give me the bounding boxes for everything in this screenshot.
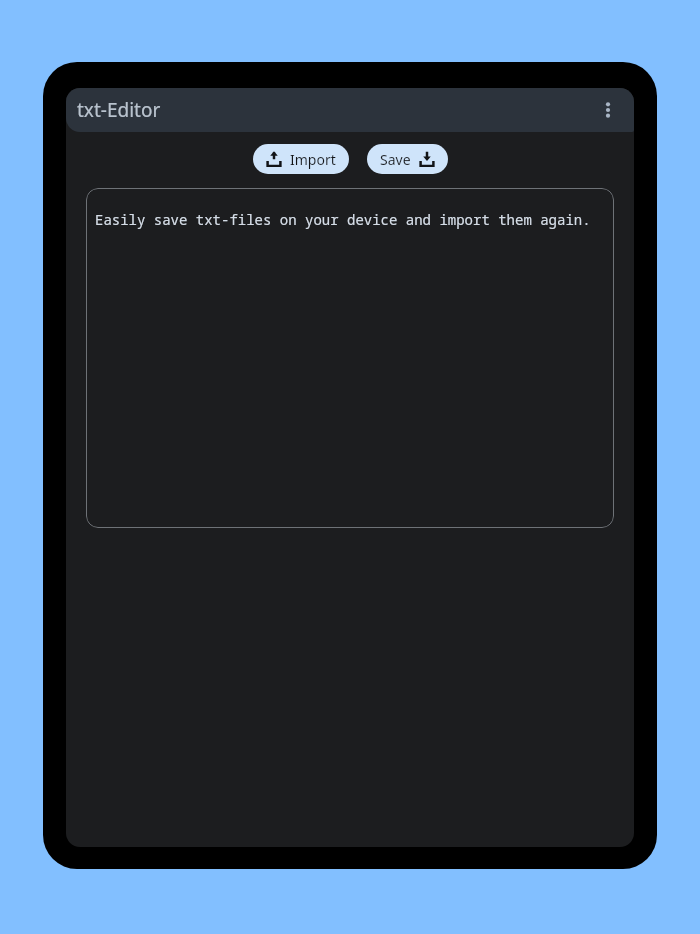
staticText: Easily save txt-files on your device and… bbox=[95, 210, 591, 229]
button[interactable]: Import bbox=[253, 144, 349, 174]
button[interactable]: More options bbox=[590, 92, 626, 128]
button[interactable]: Save bbox=[367, 144, 448, 174]
button[interactable]: Easily save txt-files on your device and… bbox=[86, 188, 614, 528]
staticText: txt-Editor bbox=[77, 97, 161, 123]
staticText: Save bbox=[380, 150, 411, 169]
staticText: Import bbox=[290, 150, 336, 169]
